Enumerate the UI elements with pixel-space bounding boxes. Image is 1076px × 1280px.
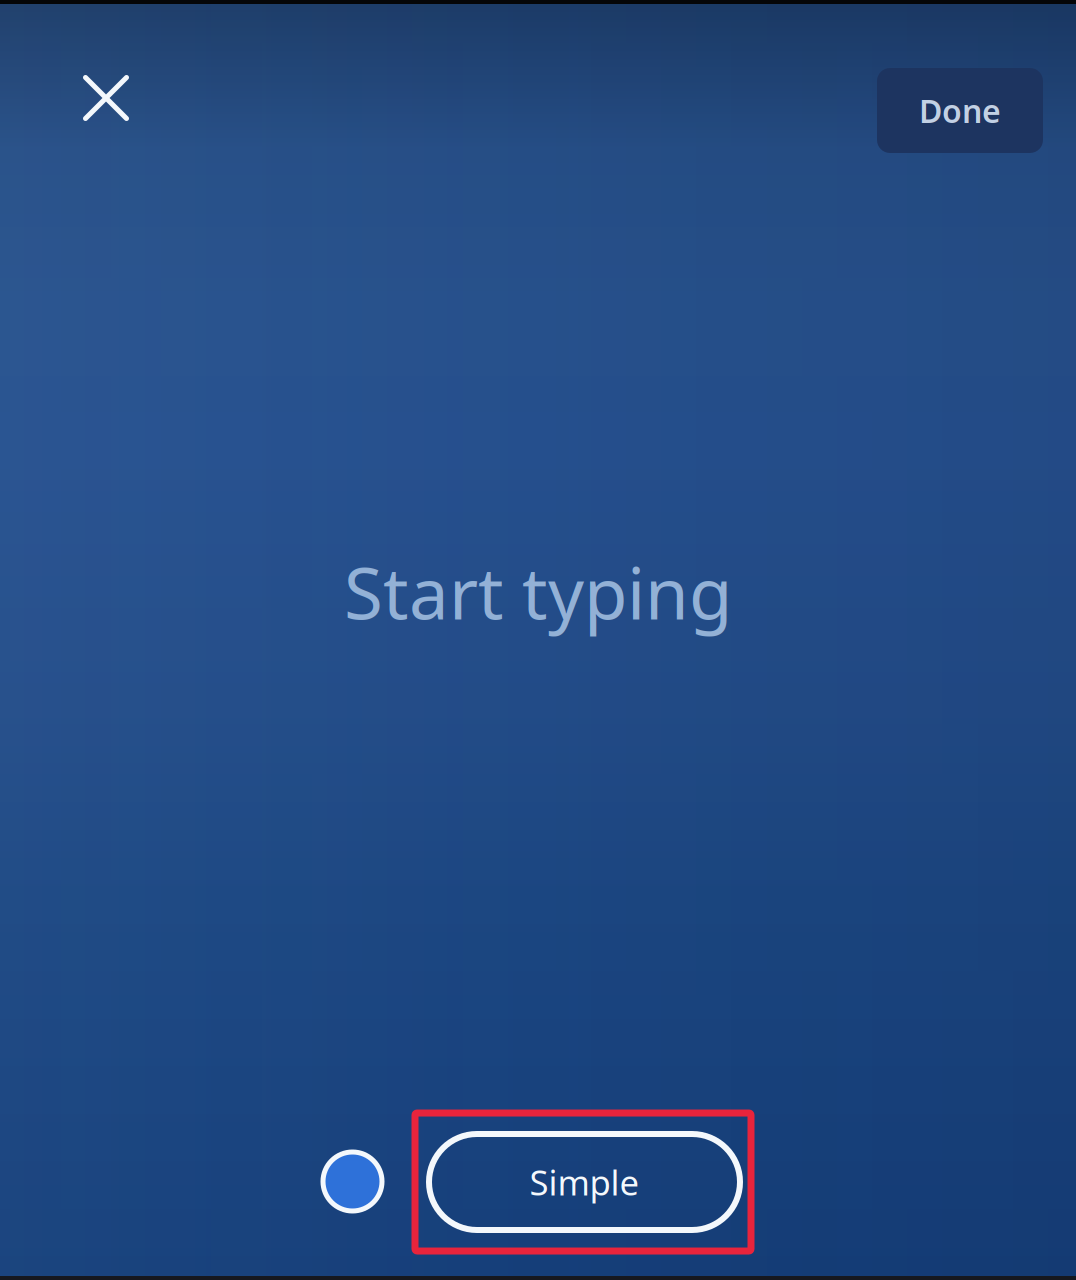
button[interactable]: Done: [877, 68, 1043, 153]
staticText: Start typing: [344, 545, 732, 639]
staticText: Done: [919, 89, 1001, 132]
button[interactable]: Simple: [415, 1113, 751, 1251]
staticText: Simple: [529, 1159, 639, 1205]
button[interactable]: Text colour: [323, 1151, 382, 1212]
button[interactable]: Close: [57, 49, 155, 147]
